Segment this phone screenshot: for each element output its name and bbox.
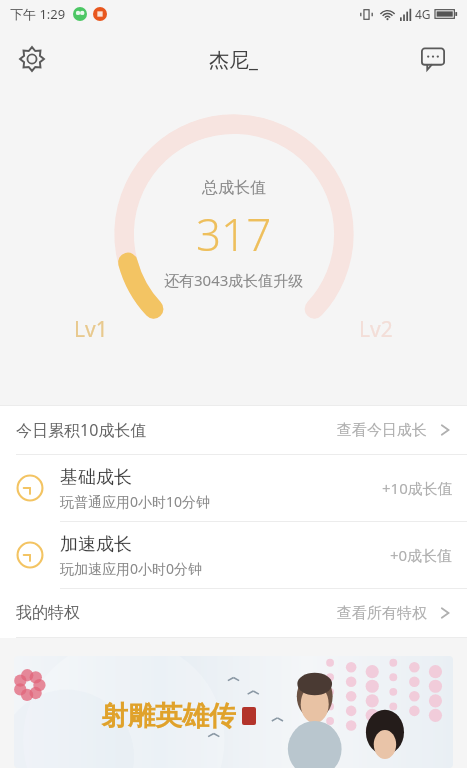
staticText: 玩加速应用0小时0分钟 bbox=[60, 559, 203, 578]
staticText: 查看所有特权 bbox=[337, 604, 427, 623]
staticText: 查看今日成长 bbox=[337, 421, 427, 440]
staticText: 加速成长 bbox=[60, 533, 132, 556]
button[interactable]: Game banner bbox=[14, 656, 453, 768]
staticText: Lv1 bbox=[74, 315, 108, 344]
button[interactable]: Messages bbox=[409, 35, 457, 83]
button[interactable]: 基础成长 bbox=[0, 455, 467, 521]
button[interactable]: 我的特权 bbox=[0, 589, 467, 637]
staticText: 下午 1:29 bbox=[10, 5, 66, 23]
staticText: 总成长值 bbox=[202, 178, 266, 198]
staticText: 今日累积10成长值 bbox=[16, 419, 147, 441]
button[interactable]: 加速成长 bbox=[0, 522, 467, 588]
staticText: 4G bbox=[415, 6, 431, 22]
staticText: 杰尼_ bbox=[209, 46, 258, 73]
staticText: 我的特权 bbox=[16, 603, 80, 623]
staticText: 317 bbox=[196, 204, 272, 264]
staticText: Lv2 bbox=[359, 315, 393, 344]
staticText: +0成长值 bbox=[390, 545, 453, 565]
staticText: 基础成长 bbox=[60, 466, 132, 489]
button[interactable]: Settings bbox=[8, 35, 56, 83]
button[interactable]: 今日累积10成长值 bbox=[0, 406, 467, 454]
staticText: 射雕英雄传 bbox=[101, 699, 236, 733]
staticText: 玩普通应用0小时10分钟 bbox=[60, 492, 211, 511]
staticText: 还有3043成长值升级 bbox=[164, 270, 304, 290]
staticText: +10成长值 bbox=[382, 478, 453, 498]
